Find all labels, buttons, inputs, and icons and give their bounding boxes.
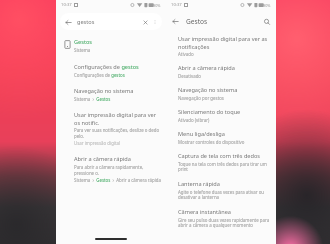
button[interactable]: Clear xyxy=(140,17,150,27)
button[interactable]: Search xyxy=(261,16,272,27)
staticText: Para abrir a câmera rapidamente, pressio… xyxy=(74,164,161,176)
staticText: 10:37 xyxy=(171,2,182,8)
staticText: gestos xyxy=(77,18,95,26)
staticText: Navegação no sistema xyxy=(178,86,238,94)
staticText: Usar impressão digital xyxy=(74,140,121,146)
staticText: Navegação por gestos xyxy=(178,95,224,101)
button[interactable]: Abrir a câmera rápida xyxy=(166,64,276,86)
staticText: Configurações de gestos xyxy=(74,63,139,71)
button[interactable]: Silenciamento do toque xyxy=(166,108,276,130)
staticText: Navegação no sistema xyxy=(74,87,134,95)
staticText: 90% xyxy=(263,3,271,8)
staticText: Sistema xyxy=(74,47,91,53)
staticText: Silenciamento do toque xyxy=(178,108,241,116)
staticText: Para ver suas notificações, deslize o de… xyxy=(74,127,161,139)
staticText: Mostrar controles do dispositivo xyxy=(178,139,245,145)
staticText: Abrir a câmera rápida xyxy=(178,64,235,72)
staticText: Usar impressão digital para ver os notif… xyxy=(74,111,161,126)
button[interactable]: Captura de tela com três dedos xyxy=(166,152,276,180)
button[interactable]: More options xyxy=(151,17,159,27)
button[interactable]: Navegação no sistema xyxy=(56,87,166,102)
staticText: Sistema › Gestos › Abrir a câmera rápida xyxy=(74,177,161,183)
staticText: Sistema › Gestos xyxy=(74,96,111,102)
staticText: 10:37 xyxy=(61,2,72,8)
staticText: Abrir a câmera rápida xyxy=(74,155,131,163)
staticText: Agite o telefone duas vezes para ativar … xyxy=(178,189,271,201)
staticText: Menu liga/desliga xyxy=(178,130,225,138)
button[interactable]: Menu liga/desliga xyxy=(166,130,276,152)
staticText: Gestos xyxy=(74,38,92,46)
button[interactable]: Navegação no sistema xyxy=(166,86,276,108)
staticText: 90% xyxy=(153,3,161,8)
staticText: Configurações de gestos xyxy=(74,72,125,78)
button[interactable]: Gestos xyxy=(56,37,166,54)
button[interactable]: Abrir a câmera rápida xyxy=(56,155,166,183)
staticText: Desativado xyxy=(178,73,202,79)
staticText: Câmera instantânea xyxy=(178,208,231,216)
staticText: Gestos xyxy=(186,17,208,26)
staticText: Captura de tela com três dedos xyxy=(178,152,260,160)
staticText: Toque na tela com três dedos para tirar … xyxy=(178,161,271,173)
button[interactable]: Usar impressão digital para ver as notif… xyxy=(166,35,276,64)
staticText: Lanterna rápida xyxy=(178,180,220,188)
staticText: Gire seu pulso duas vezes rapidamente pa… xyxy=(178,217,271,229)
button[interactable]: Câmera instantânea xyxy=(166,208,276,236)
button[interactable]: Usar impressão digital para ver os notif… xyxy=(56,111,166,146)
button[interactable]: Lanterna rápida xyxy=(166,180,276,208)
staticText: Ativado xyxy=(178,51,194,57)
button[interactable]: Back xyxy=(63,17,73,27)
button[interactable]: Back xyxy=(60,13,162,30)
button[interactable]: Configurações de gestos xyxy=(56,63,166,78)
staticText: Usar impressão digital para ver as notif… xyxy=(178,35,271,50)
staticText: Ativado (vibrar) xyxy=(178,117,210,123)
button[interactable]: Back xyxy=(170,16,181,27)
